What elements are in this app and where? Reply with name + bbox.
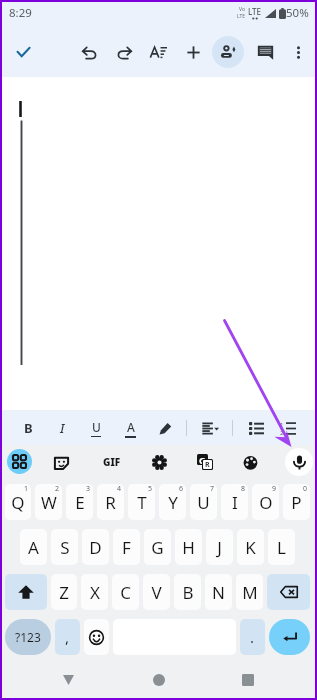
button[interactable]: Bulleted list <box>242 414 270 442</box>
staticText: J <box>217 536 222 559</box>
staticText: G <box>199 454 206 465</box>
staticText: Q <box>11 491 25 514</box>
button[interactable]: Redo <box>107 35 141 69</box>
button[interactable]: B <box>174 574 201 610</box>
button[interactable]: A <box>20 529 47 565</box>
button[interactable]: Z <box>51 574 77 610</box>
staticText: O <box>259 491 273 514</box>
button[interactable]: Insert <box>176 35 210 69</box>
staticText: 8:29 <box>9 5 32 21</box>
button[interactable]: U <box>190 484 217 520</box>
button[interactable]: M <box>236 574 263 610</box>
button[interactable]: Recents <box>227 659 269 700</box>
staticText: K <box>245 536 256 559</box>
staticText: LTE <box>248 6 262 17</box>
button[interactable]: S <box>51 529 78 565</box>
staticText: V <box>151 581 162 604</box>
staticText: W <box>41 491 57 514</box>
button[interactable]: I <box>221 484 248 520</box>
staticText: U <box>92 419 101 435</box>
button[interactable]: Undo <box>72 35 106 69</box>
staticText: 3 <box>86 484 91 494</box>
staticText: D <box>89 536 102 559</box>
staticText: 2 <box>55 484 60 494</box>
staticText: 50% <box>286 5 309 21</box>
button[interactable]: F <box>113 529 140 565</box>
button[interactable]: W <box>35 484 62 520</box>
button[interactable]: Underline <box>82 414 110 442</box>
button[interactable]: V <box>143 574 170 610</box>
staticText: 5 <box>148 484 153 494</box>
button[interactable]: Q <box>5 484 31 520</box>
button[interactable]: Done <box>6 35 40 69</box>
staticText: Y <box>168 491 178 514</box>
button[interactable]: Home <box>138 659 180 700</box>
button[interactable]: Comments <box>248 35 282 69</box>
button[interactable]: Numbered list <box>274 414 302 442</box>
staticText: A <box>127 419 135 435</box>
staticText: . <box>250 627 255 647</box>
button[interactable]: Highlight <box>151 414 179 442</box>
staticText: I <box>60 419 65 437</box>
staticText: GIF <box>103 455 121 469</box>
button[interactable]: Voice input <box>285 448 313 476</box>
button[interactable]: Emoji <box>84 619 109 655</box>
button[interactable]: Theme <box>236 448 264 476</box>
staticText: 7 <box>210 484 215 494</box>
button[interactable]: Shift <box>5 574 47 610</box>
button[interactable]: T <box>128 484 155 520</box>
staticText: 2 <box>280 429 284 436</box>
staticText: F <box>122 536 131 559</box>
button[interactable]: X <box>81 574 108 610</box>
button[interactable]: Settings <box>145 448 173 476</box>
button[interactable]: N <box>205 574 232 610</box>
staticText: N <box>212 581 225 604</box>
staticText: , <box>65 627 70 647</box>
button[interactable]: Apps <box>7 449 32 474</box>
staticText: 6 <box>179 484 184 494</box>
button[interactable]: K <box>237 529 264 565</box>
staticText: R <box>205 460 210 469</box>
button[interactable]: D <box>82 529 109 565</box>
button[interactable]: Backspace <box>267 574 310 610</box>
button[interactable]: Enter <box>269 619 310 655</box>
button[interactable]: Back <box>47 659 89 700</box>
button[interactable]: Translate <box>191 448 219 476</box>
button[interactable]: L <box>268 529 295 565</box>
staticText: E <box>75 491 85 514</box>
button[interactable]: Italic <box>48 414 76 442</box>
staticText: 4 <box>117 484 122 494</box>
button[interactable]: C <box>112 574 139 610</box>
staticText: C <box>120 581 131 604</box>
button[interactable]: E <box>66 484 93 520</box>
button[interactable]: Text formatting <box>141 35 175 69</box>
staticText: G <box>151 536 164 559</box>
button[interactable]: GIF <box>97 447 127 477</box>
staticText: B <box>24 419 33 437</box>
staticText: 9 <box>272 484 277 494</box>
button[interactable]: Text colour <box>116 414 144 442</box>
staticText: 8 <box>241 484 246 494</box>
button[interactable]: Bold <box>14 414 42 442</box>
staticText: P <box>291 491 302 514</box>
staticText: ?123 <box>15 629 41 645</box>
button[interactable]: Share <box>211 35 245 69</box>
button[interactable]: J <box>206 529 233 565</box>
button[interactable]: . <box>240 619 265 655</box>
staticText: Vo <box>239 6 245 13</box>
button[interactable]: Stickers <box>47 448 75 476</box>
button[interactable]: P <box>283 484 310 520</box>
button[interactable]: R <box>97 484 124 520</box>
button[interactable]: Alignment <box>196 414 224 442</box>
button[interactable]: G <box>144 529 171 565</box>
button[interactable]: Y <box>159 484 186 520</box>
button[interactable]: O <box>252 484 279 520</box>
staticText: S <box>60 536 70 559</box>
staticText: A <box>28 536 39 559</box>
staticText: T <box>137 491 147 514</box>
button[interactable]: ?123 <box>5 619 51 655</box>
button[interactable]: , <box>55 619 80 655</box>
button[interactable]: H <box>175 529 202 565</box>
button[interactable]: More options <box>281 35 315 69</box>
